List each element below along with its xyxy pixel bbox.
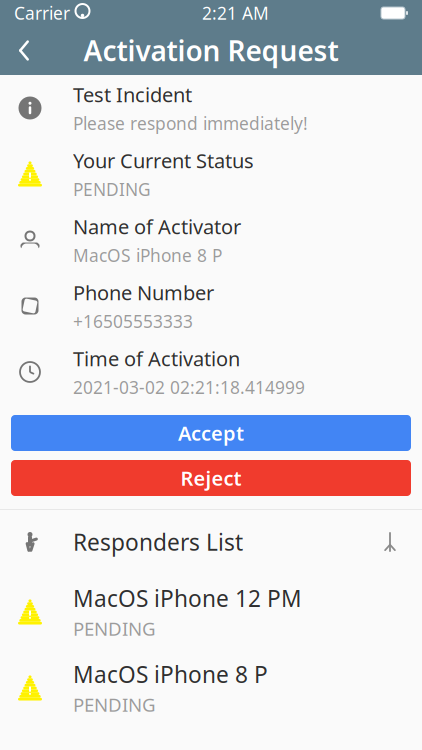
button[interactable]: Reject <box>11 460 411 496</box>
button[interactable]: MacOS iPhone 12 PM <box>0 574 422 650</box>
button[interactable]: MacOS iPhone 8 P <box>0 650 422 726</box>
staticText: PENDING <box>73 178 151 201</box>
staticText: MacOS iPhone 12 PM <box>73 583 302 613</box>
staticText: Activation Request <box>83 32 338 69</box>
staticText: PENDING <box>73 692 156 717</box>
button[interactable]: Accept <box>11 415 411 451</box>
staticText: Name of Activator <box>73 213 241 240</box>
button[interactable]: Back <box>0 26 48 75</box>
staticText: 2:21 AM <box>202 1 269 24</box>
staticText: Phone Number <box>73 279 214 306</box>
staticText: MacOS iPhone 8 P <box>73 244 222 267</box>
staticText: Your Current Status <box>73 147 254 174</box>
staticText: Please respond immediately! <box>73 112 308 135</box>
staticText: PENDING <box>73 616 156 641</box>
staticText: Carrier <box>14 1 70 24</box>
staticText: Responders List <box>73 527 243 557</box>
button[interactable]: Responders List <box>0 510 422 574</box>
staticText: Time of Activation <box>73 345 240 372</box>
staticText: 2021-03-02 02:21:18.414999 <box>73 376 305 399</box>
staticText: +16505553333 <box>73 310 193 333</box>
staticText: MacOS iPhone 8 P <box>73 659 268 689</box>
staticText: Accept <box>178 420 244 446</box>
staticText: Test Incident <box>73 81 192 108</box>
staticText: Reject <box>180 465 241 491</box>
